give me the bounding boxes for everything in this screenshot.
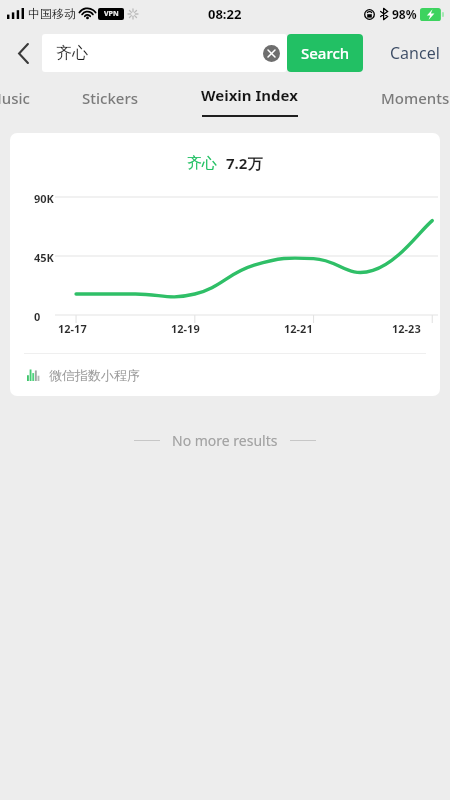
staticText: 98% (392, 6, 417, 22)
staticText: 齐心 (56, 43, 88, 63)
button[interactable]: 齐心 (10, 133, 440, 396)
staticText: 08:22 (208, 5, 242, 23)
button[interactable]: Music (0, 80, 40, 116)
staticText: Search (301, 43, 350, 63)
button[interactable]: Weixin Index (198, 85, 301, 117)
staticText: Music (0, 88, 30, 108)
staticText: 齐心 (187, 154, 217, 173)
staticText: Cancel (390, 42, 440, 64)
button[interactable]: Stickers (74, 80, 147, 116)
button[interactable]: Cancel (386, 35, 444, 71)
button[interactable]: Back (6, 36, 40, 70)
button[interactable]: Clear text (263, 45, 280, 62)
staticText: 微信指数小程序 (49, 367, 140, 383)
staticText: Moments (381, 88, 450, 108)
button[interactable]: 微信指数小程序 (10, 354, 440, 396)
button[interactable]: Search (287, 34, 363, 72)
button[interactable]: 齐心 (42, 34, 287, 72)
staticText: Weixin Index (201, 85, 298, 105)
button[interactable]: Moments (373, 80, 450, 116)
staticText: 中国移动 (28, 6, 76, 21)
staticText: 12-19 (171, 321, 200, 336)
staticText: 12-17 (58, 321, 87, 336)
staticText: 12-23 (392, 321, 421, 336)
staticText: 7.2万 (226, 153, 263, 173)
staticText: 45K (34, 250, 54, 265)
staticText: Stickers (82, 88, 139, 108)
staticText: VPN (104, 9, 119, 19)
staticText: 0 (34, 309, 41, 324)
staticText: No more results (172, 431, 278, 450)
staticText: 12-21 (284, 321, 313, 336)
staticText: 90K (34, 191, 54, 206)
